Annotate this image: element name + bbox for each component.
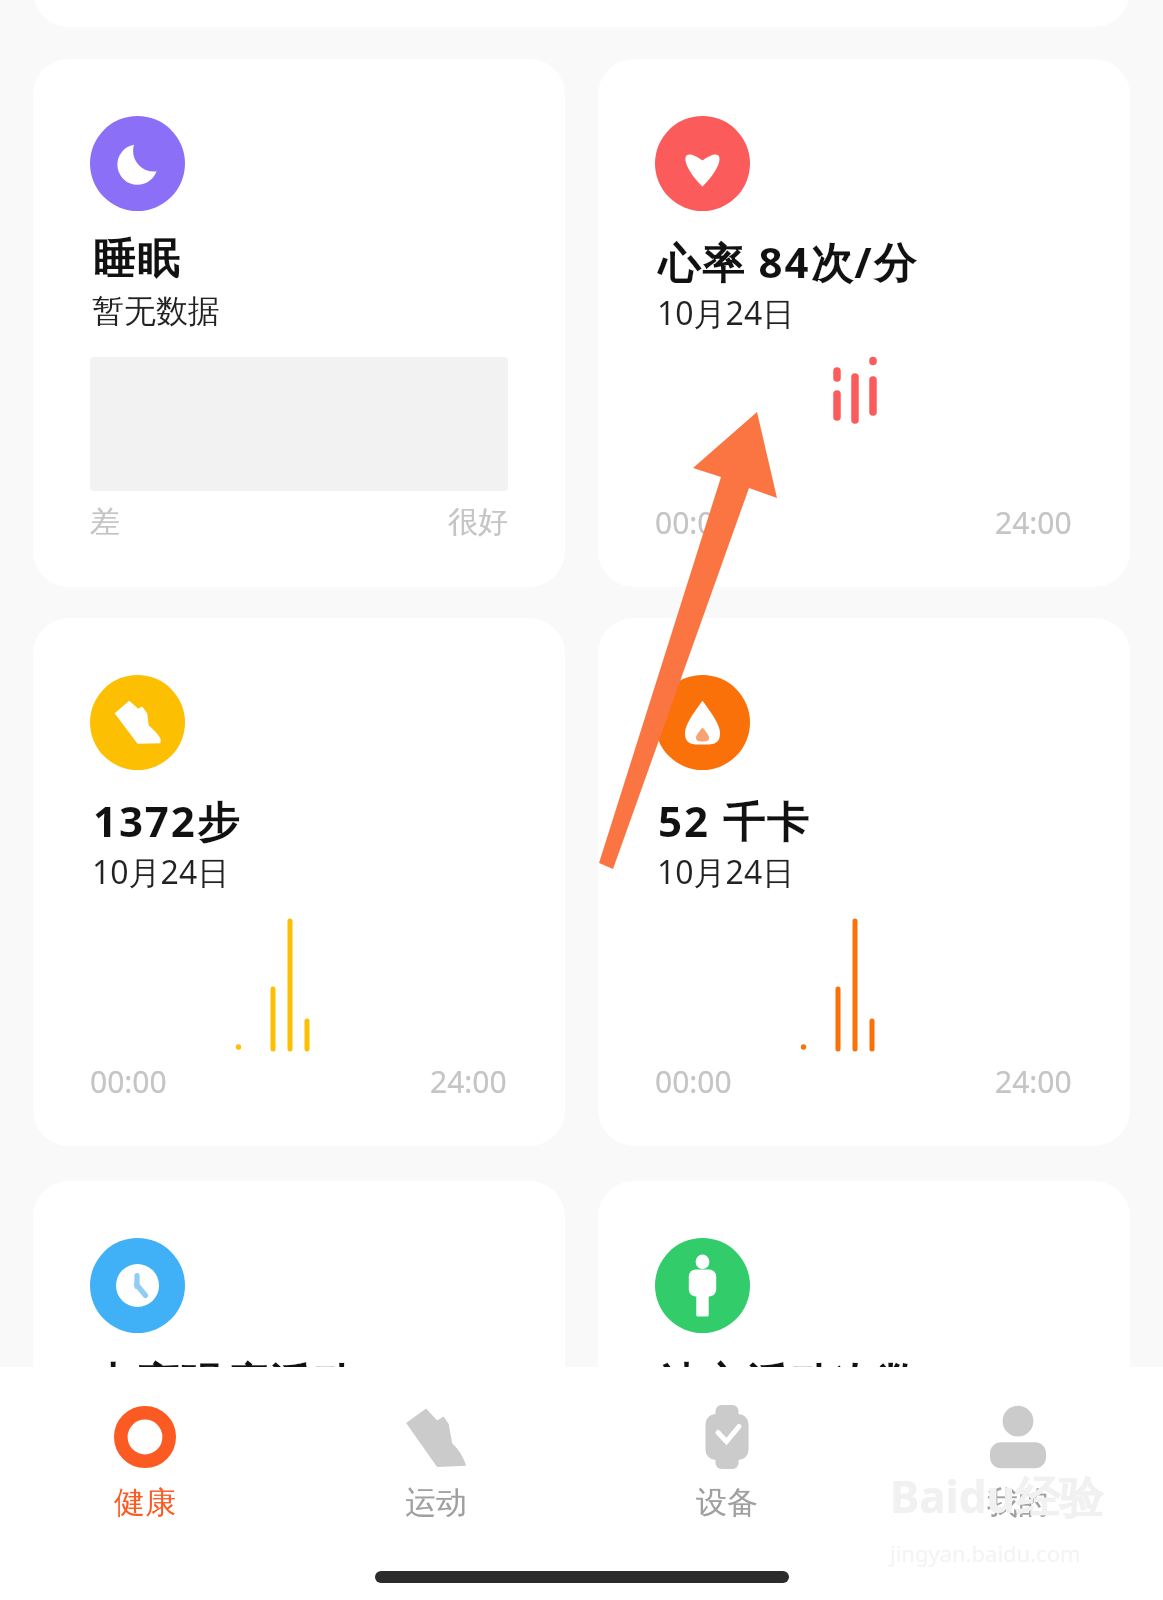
staticText: 睡眠	[93, 233, 181, 286]
staticText: Baidu经验	[890, 1466, 1104, 1526]
staticText: 我的	[987, 1483, 1049, 1522]
staticText: 24:00	[995, 502, 1072, 543]
button[interactable]: 站立活动次数	[598, 1181, 1130, 1600]
staticText: 10月24日	[657, 291, 795, 335]
button[interactable]: 步数	[33, 618, 565, 1146]
staticText: 1372步	[93, 792, 241, 849]
staticText: 中高强度活动	[93, 1358, 357, 1411]
staticText: 10月24日	[92, 850, 230, 894]
button[interactable]: 健康	[0, 1367, 290, 1527]
staticText: 52 千卡	[658, 792, 811, 849]
staticText: 暂无数据	[92, 291, 220, 331]
button[interactable]: 卡路里	[598, 618, 1130, 1146]
staticText: 10月24日	[657, 850, 795, 894]
staticText: jingyan.baidu.com	[890, 1538, 1081, 1568]
button[interactable]: 运动	[290, 1367, 581, 1527]
staticText: 站立活动次数	[658, 1358, 922, 1411]
staticText: 心率 84次/分	[658, 233, 918, 290]
staticText: 很好	[448, 503, 508, 541]
staticText: 00:00	[655, 502, 732, 543]
button[interactable]: 中高强度活动	[33, 1181, 565, 1600]
staticText: 00:00	[90, 1061, 167, 1102]
staticText: 00:00	[655, 1061, 732, 1102]
staticText: 差	[90, 503, 120, 541]
staticText: 健康	[114, 1483, 176, 1522]
staticText: 运动	[405, 1483, 467, 1522]
staticText: 24:00	[995, 1061, 1072, 1102]
staticText: 设备	[696, 1483, 758, 1522]
button[interactable]: 设备	[581, 1367, 872, 1527]
button[interactable]: 睡眠	[33, 59, 565, 587]
button[interactable]: 我的	[872, 1367, 1163, 1527]
button[interactable]: 心率	[598, 59, 1130, 587]
staticText: 24:00	[430, 1061, 507, 1102]
